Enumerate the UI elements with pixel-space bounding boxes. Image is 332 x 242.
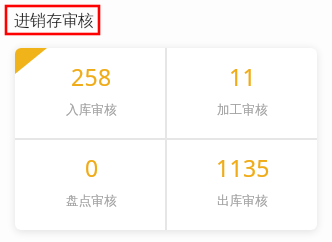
button[interactable]: 258 xyxy=(15,48,166,139)
other: 待办标记 xyxy=(15,48,47,74)
staticText: 11 xyxy=(229,61,256,92)
staticText: 出库审核 xyxy=(217,193,268,209)
staticText: 入库审核 xyxy=(66,102,117,118)
staticText: 0 xyxy=(85,152,99,183)
staticText: 1135 xyxy=(216,152,270,183)
staticText: 盘点审核 xyxy=(66,193,117,209)
staticText: 进销存审核 xyxy=(14,11,94,31)
staticText: 加工审核 xyxy=(217,102,268,118)
button[interactable]: 0 xyxy=(15,139,166,230)
staticText: 258 xyxy=(71,61,112,92)
button[interactable]: 11 xyxy=(166,48,317,139)
button[interactable]: 1135 xyxy=(166,139,317,230)
